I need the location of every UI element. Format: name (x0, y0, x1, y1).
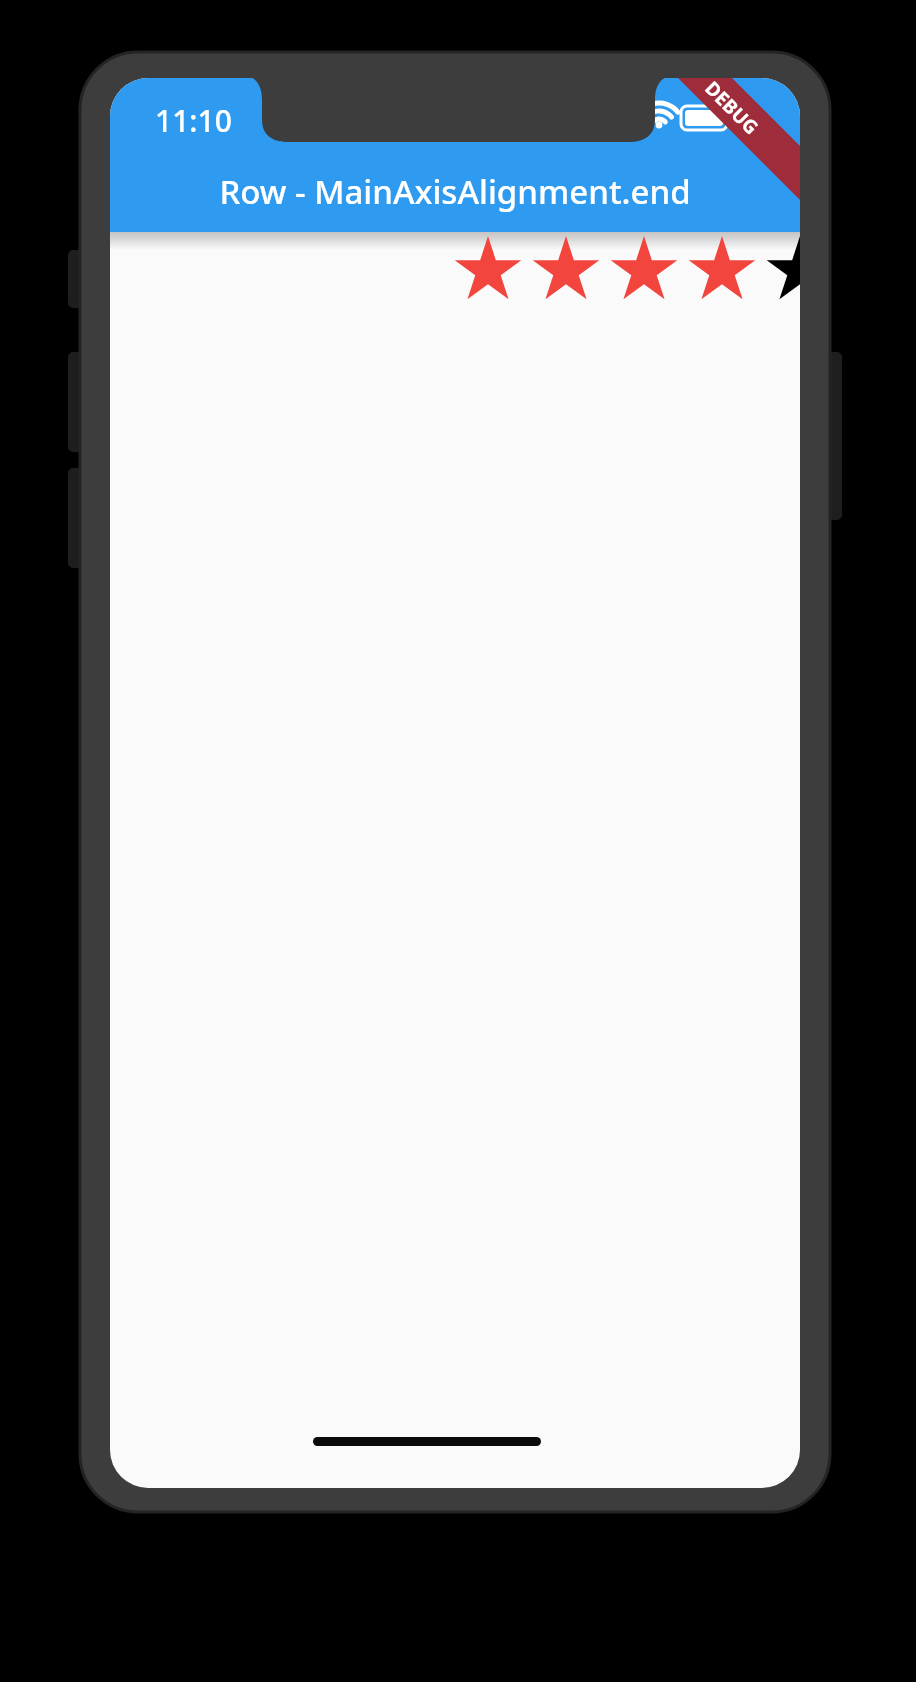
button[interactable]: Rate 2 stars (444, 236, 522, 306)
staticText: DEBUG (699, 75, 765, 141)
button[interactable]: Rate 4 stars (600, 236, 678, 306)
other: Debug banner (672, 80, 792, 136)
button[interactable]: Row - MainAxisAlignment.end (110, 166, 800, 216)
staticText: 11:10 (155, 100, 232, 141)
button[interactable]: Rate 1 stars (366, 236, 444, 306)
button[interactable]: Rate 3 stars (522, 236, 600, 306)
staticText: Row - MainAxisAlignment.end (219, 169, 691, 214)
button[interactable]: Rate 5 stars (678, 236, 756, 306)
